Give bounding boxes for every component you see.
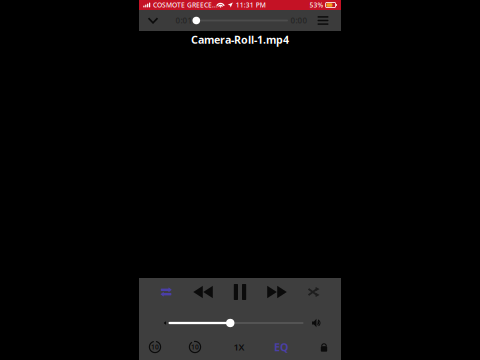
staticText: 11:31 PM: [236, 1, 266, 9]
staticText: 10: [151, 343, 159, 351]
staticText: COSMOTE GREECE...: [153, 1, 218, 9]
button[interactable]: Minimize player: [140, 10, 166, 31]
button[interactable]: Skip back 10 seconds: [140, 337, 170, 357]
button[interactable]: EQ: [266, 337, 296, 357]
staticText: 53%: [310, 1, 324, 9]
button[interactable]: Rewind: [184, 281, 221, 303]
button[interactable]: Repeat: [147, 281, 184, 303]
staticText: 0:01: [175, 15, 192, 26]
staticText: 1X: [233, 341, 244, 353]
button[interactable]: Shuffle: [295, 281, 332, 303]
staticText: EQ: [274, 340, 288, 354]
button[interactable]: Skip forward 10 seconds: [180, 337, 210, 357]
button[interactable]: Fast forward: [258, 281, 295, 303]
staticText: 10: [191, 343, 199, 351]
button[interactable]: Pause: [221, 281, 258, 303]
staticText: Camera-Roll-1.mp4: [191, 32, 289, 47]
staticText: 0:00: [290, 15, 307, 26]
button[interactable]: Playback menu: [311, 10, 335, 31]
button[interactable]: 1X: [224, 337, 254, 357]
button[interactable]: Lock rotation: [309, 337, 339, 357]
